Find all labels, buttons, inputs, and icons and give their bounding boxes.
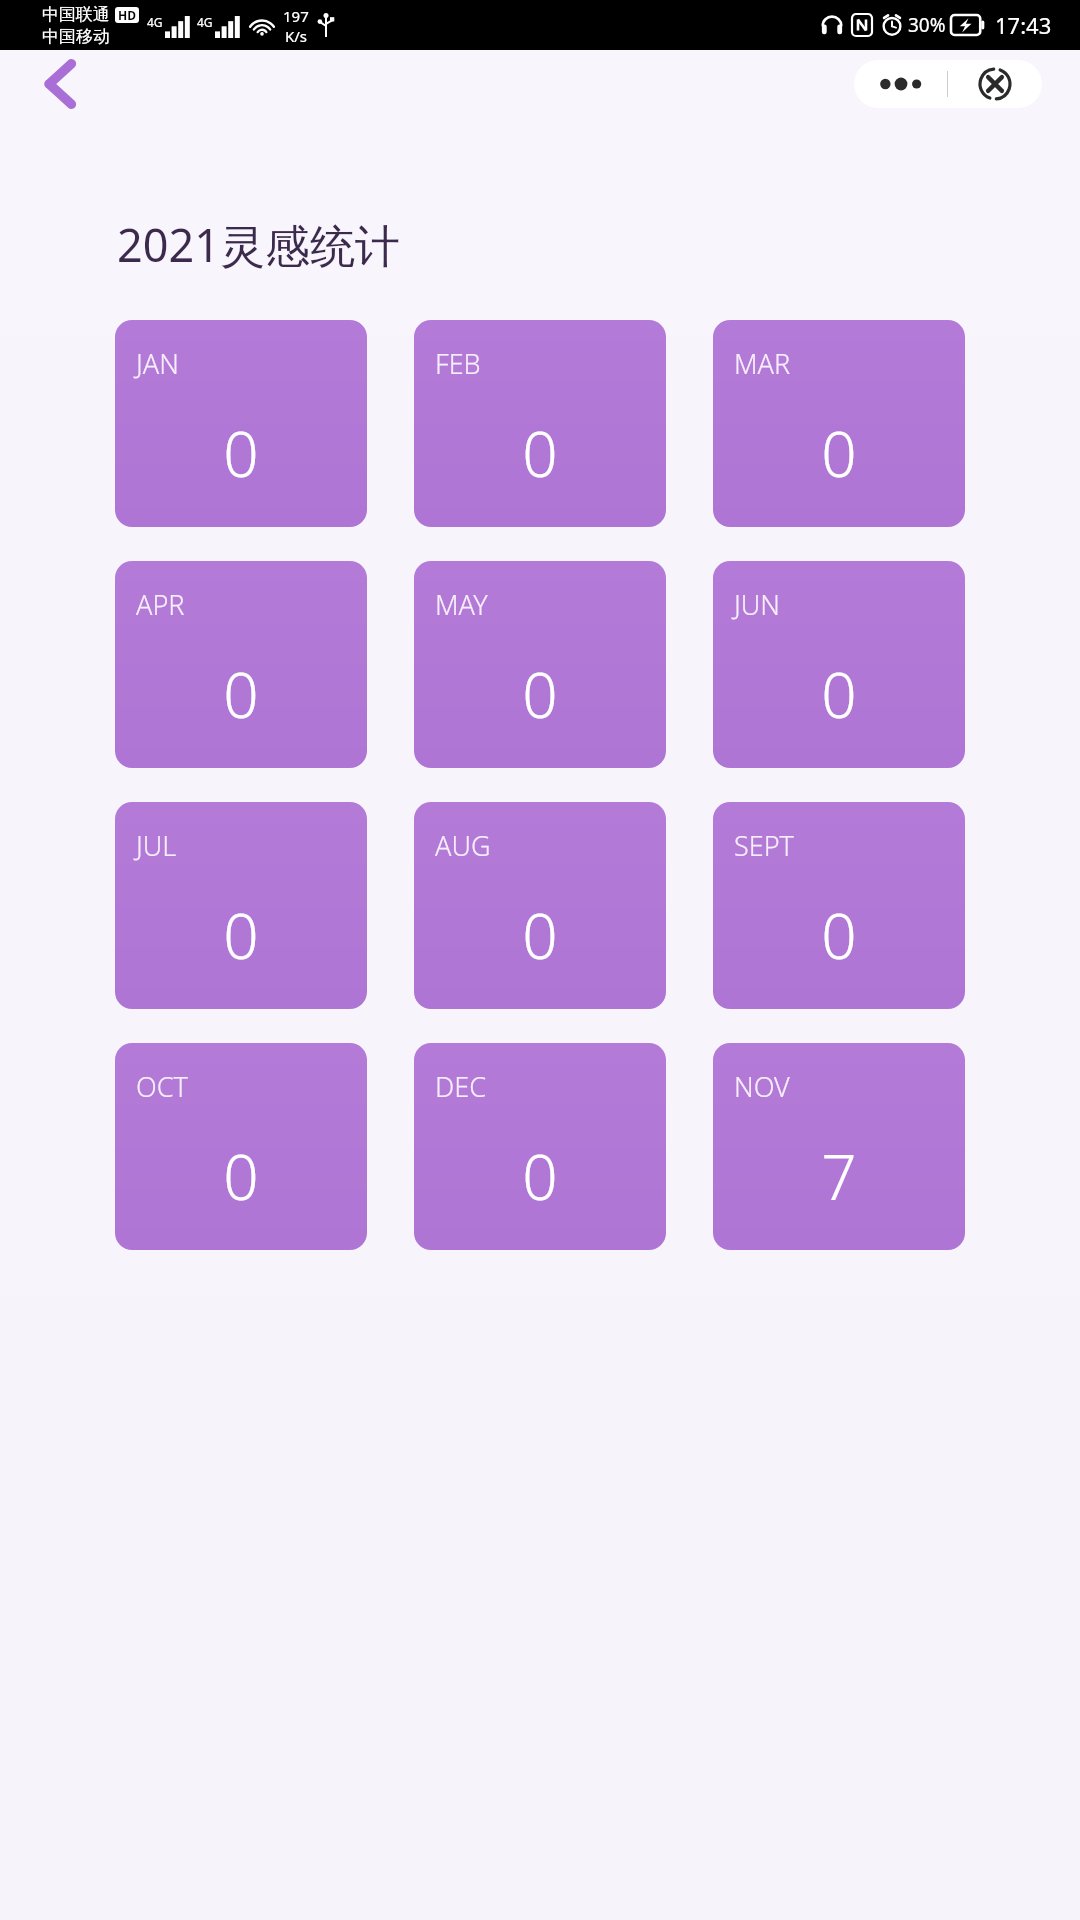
staticText: MAR <box>734 345 791 382</box>
button[interactable]: More <box>854 60 947 108</box>
button[interactable]: JUL <box>115 802 367 1009</box>
staticText: JUN <box>734 586 780 623</box>
staticText: 0 <box>713 411 965 495</box>
button[interactable]: APR <box>115 561 367 768</box>
button[interactable]: Close <box>948 60 1042 108</box>
staticText: 0 <box>115 1134 367 1218</box>
button[interactable]: DEC <box>414 1043 666 1250</box>
staticText: 7 <box>713 1134 965 1218</box>
staticText: FEB <box>435 345 481 382</box>
staticText: K/s <box>285 26 308 46</box>
staticText: 4G <box>147 14 163 30</box>
staticText: AUG <box>435 827 491 864</box>
staticText: 0 <box>115 411 367 495</box>
button[interactable]: SEPT <box>713 802 965 1009</box>
button[interactable]: FEB <box>414 320 666 527</box>
button[interactable]: AUG <box>414 802 666 1009</box>
staticText: 中国联通 <box>42 4 110 25</box>
button[interactable]: Back <box>22 50 98 118</box>
staticText: NOV <box>734 1068 790 1105</box>
staticText: 0 <box>115 893 367 977</box>
staticText: 0 <box>115 652 367 736</box>
staticText: 0 <box>414 893 666 977</box>
staticText: JUL <box>136 827 177 864</box>
staticText: 4G <box>197 14 213 30</box>
staticText: 0 <box>414 411 666 495</box>
staticText: JAN <box>136 345 179 382</box>
staticText: 17:43 <box>995 10 1052 40</box>
staticText: 0 <box>414 652 666 736</box>
button[interactable]: MAR <box>713 320 965 527</box>
staticText: SEPT <box>734 827 794 864</box>
staticText: 0 <box>414 1134 666 1218</box>
button[interactable]: OCT <box>115 1043 367 1250</box>
staticText: 197 <box>283 6 309 26</box>
staticText: MAY <box>435 586 488 623</box>
staticText: DEC <box>435 1068 486 1105</box>
button[interactable]: NOV <box>713 1043 965 1250</box>
staticText: APR <box>136 586 185 623</box>
staticText: 2021灵感统计 <box>117 214 400 275</box>
button[interactable]: JAN <box>115 320 367 527</box>
staticText: HD <box>118 7 136 23</box>
staticText: 0 <box>713 893 965 977</box>
button[interactable]: MAY <box>414 561 666 768</box>
staticText: 中国移动 <box>42 26 110 47</box>
staticText: 30% <box>908 12 946 38</box>
staticText: 0 <box>713 652 965 736</box>
button[interactable]: JUN <box>713 561 965 768</box>
staticText: OCT <box>136 1068 188 1105</box>
